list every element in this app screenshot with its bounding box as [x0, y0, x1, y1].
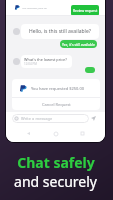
staticText: Review request	[73, 8, 98, 13]
button[interactable]: Review request	[71, 5, 99, 16]
staticText: Write a message	[21, 116, 53, 121]
button[interactable]: Home	[52, 130, 59, 137]
button[interactable]	[85, 67, 95, 73]
button[interactable]: Write a message	[12, 114, 89, 123]
staticText: Chat safely	[17, 153, 95, 172]
button[interactable]: Back	[25, 130, 32, 137]
staticText: Cancel Request	[42, 102, 71, 107]
staticText: You have requested $250.00	[31, 86, 84, 91]
button[interactable]: Yes, it's still available	[60, 40, 97, 48]
staticText: Hello, is this still available?	[29, 28, 91, 35]
button[interactable]: Recents	[79, 130, 86, 137]
staticText: and securely	[14, 172, 97, 191]
button[interactable]: Hello, is this still available?	[21, 24, 99, 39]
staticText: 12:04 PM	[24, 62, 37, 66]
button[interactable]: Send	[89, 114, 98, 123]
staticText: You received $250.00	[22, 6, 47, 9]
button[interactable]: Cancel Request	[12, 98, 100, 110]
staticText: Yes, it's still available	[62, 42, 95, 47]
button[interactable]: What's the lowest price?	[21, 55, 72, 68]
button[interactable]: You received $250.00	[15, 2, 47, 12]
staticText: What's the lowest price?	[24, 57, 67, 62]
